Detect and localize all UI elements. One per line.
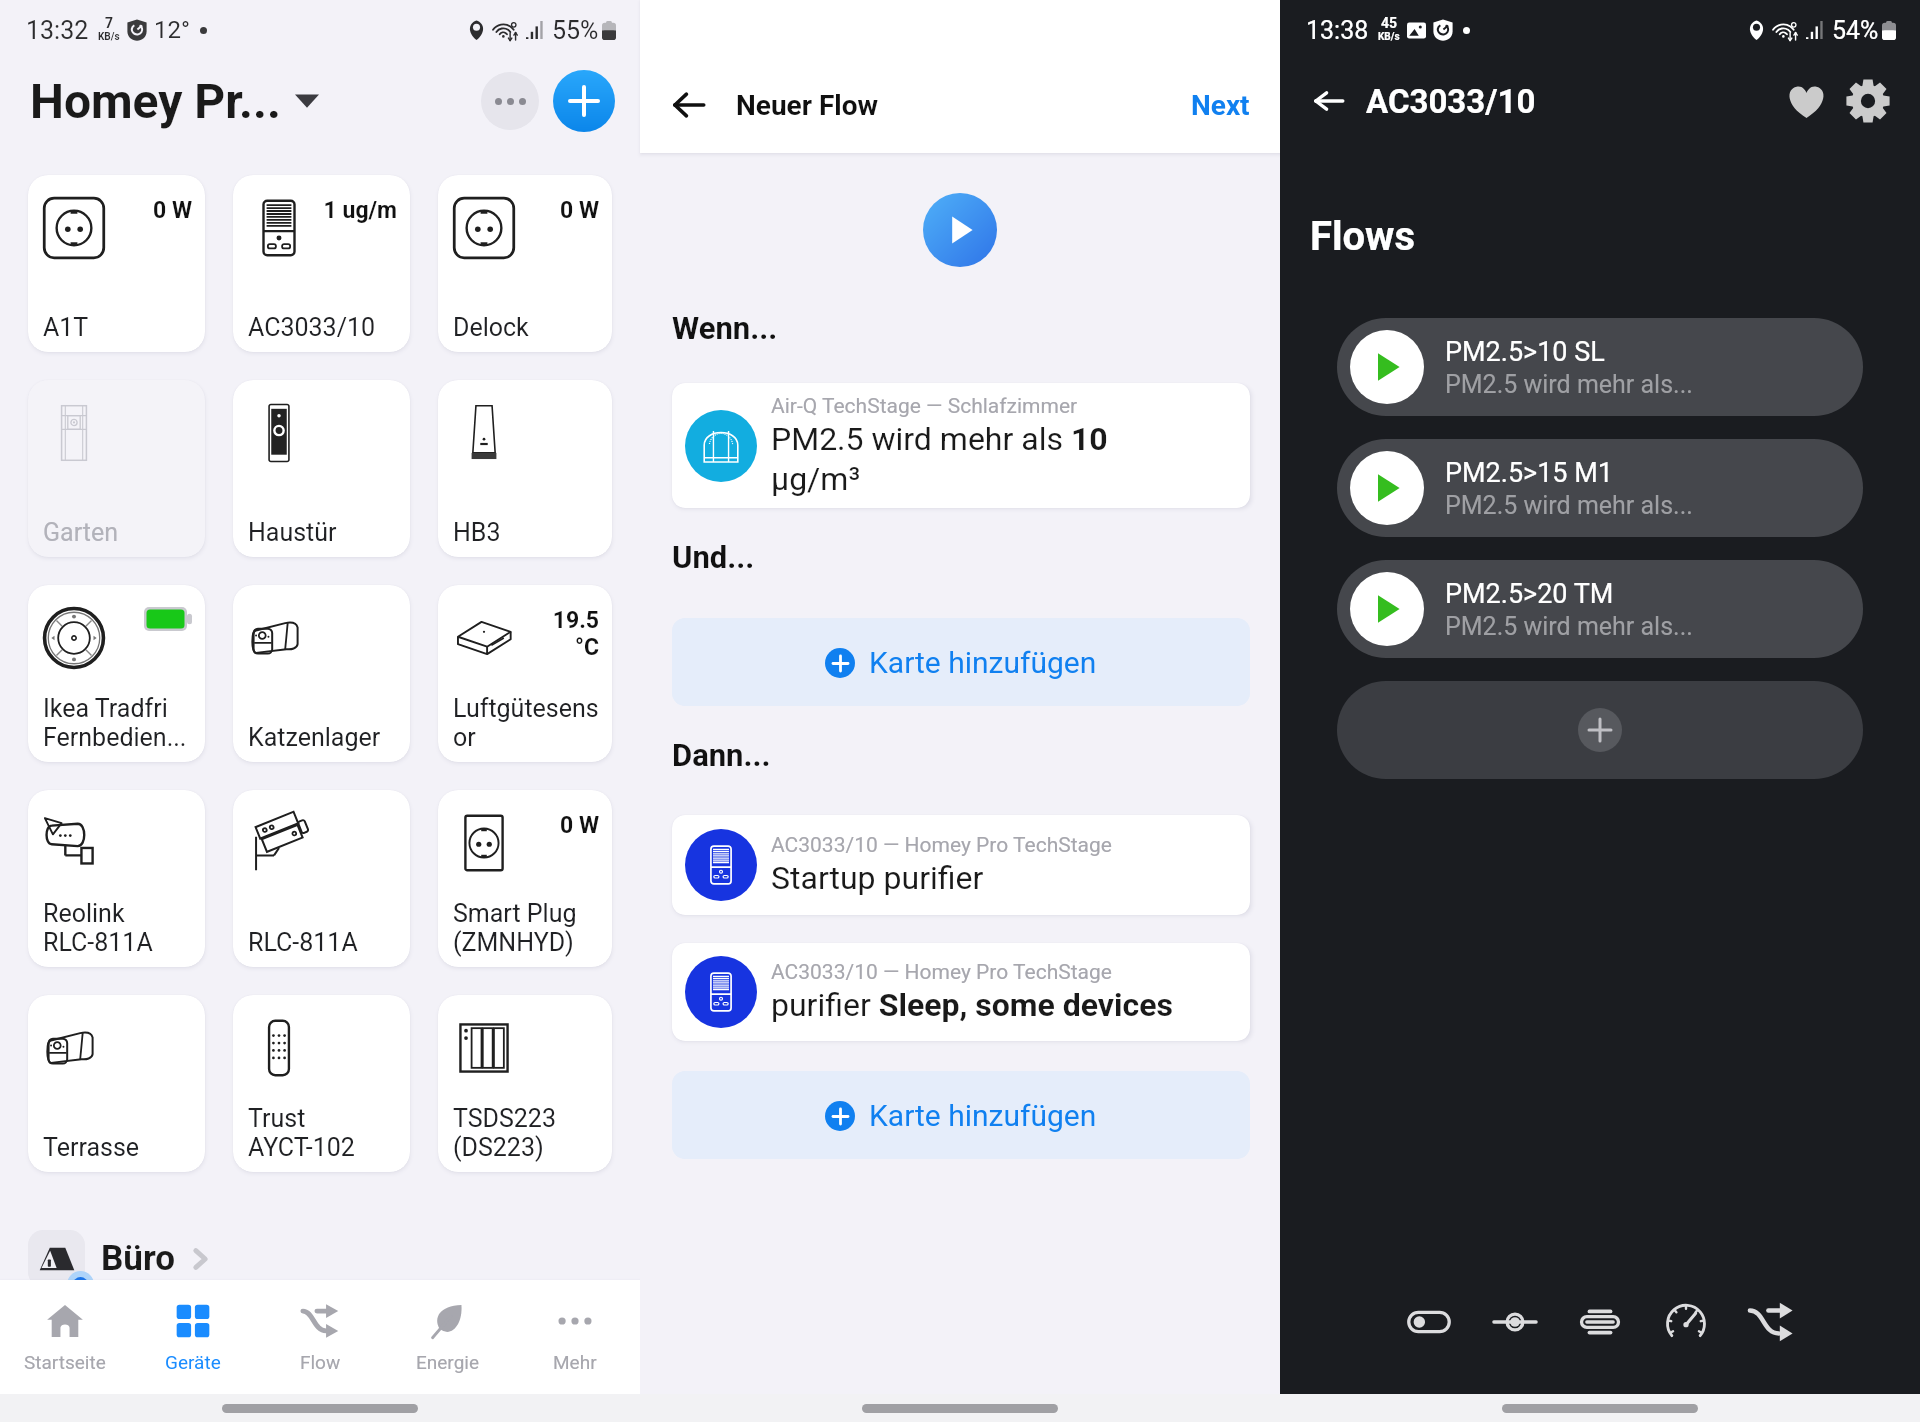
staticText: Haustür xyxy=(248,518,337,547)
staticText: 0 W xyxy=(559,197,599,224)
button[interactable]: Favorite xyxy=(1781,76,1831,126)
staticText: Flow xyxy=(300,1351,341,1373)
button[interactable]: Geräte xyxy=(131,1280,255,1394)
staticText: 0 W xyxy=(559,812,599,839)
staticText: PM2.5>15 M1 xyxy=(1445,457,1613,489)
button[interactable]: Mehr xyxy=(513,1280,637,1394)
button[interactable]: Ikea Tradfri xyxy=(28,585,205,762)
staticText: Karte hinzufügen xyxy=(869,1098,1097,1133)
staticText: (ZMNHYD) xyxy=(453,928,574,957)
staticText: Neuer Flow xyxy=(736,89,879,122)
staticText: KB/s xyxy=(98,31,120,43)
button[interactable]: Air-Q TechStage — Schlafzimmer xyxy=(672,383,1250,508)
button[interactable]: 0 W xyxy=(28,175,205,352)
staticText: 0 W xyxy=(152,197,192,224)
staticText: Startseite xyxy=(24,1351,106,1373)
staticText: PM2.5>10 SL xyxy=(1445,336,1605,368)
button[interactable]: RLC-811A xyxy=(233,790,410,967)
button[interactable]: Settings list xyxy=(1570,1292,1630,1352)
button[interactable]: 19.5 °C xyxy=(438,585,612,762)
staticText: Luftgütesens xyxy=(453,694,599,723)
staticText: RLC-811A xyxy=(248,928,358,957)
staticText: AC3033/10 xyxy=(1366,82,1536,121)
staticText: Wenn... xyxy=(672,310,778,346)
button[interactable]: PM2.5>10 SL xyxy=(1337,318,1863,416)
button[interactable]: 0 W xyxy=(438,175,612,352)
staticText: Flows xyxy=(1310,213,1416,260)
button[interactable]: Haustür xyxy=(233,380,410,557)
staticText: Büro xyxy=(101,1238,175,1279)
staticText: Trust xyxy=(248,1104,306,1133)
button[interactable]: Settings xyxy=(1843,76,1893,126)
staticText: Mehr xyxy=(553,1351,597,1373)
staticText: Geräte xyxy=(165,1351,221,1373)
staticText: Garten xyxy=(43,518,118,547)
staticText: KB/s xyxy=(1378,31,1400,43)
button[interactable]: Terrasse xyxy=(28,995,205,1172)
staticText: HB3 xyxy=(453,518,501,547)
button[interactable]: Flows xyxy=(1741,1292,1801,1352)
button[interactable]: HB3 xyxy=(438,380,612,557)
button[interactable]: PM2.5>15 M1 xyxy=(1337,439,1863,537)
staticText: PM2.5 wird mehr als... xyxy=(1445,370,1693,399)
staticText: AC3033/10 xyxy=(248,313,376,342)
staticText: Und... xyxy=(672,539,755,575)
button[interactable]: AC3033/10 — Homey Pro TechStage xyxy=(672,943,1250,1041)
button[interactable]: Karte hinzufügen xyxy=(672,1071,1250,1159)
staticText: AC3033/10 — Homey Pro TechStage xyxy=(771,960,1112,985)
button[interactable]: Trust xyxy=(233,995,410,1172)
button[interactable]: Startseite xyxy=(3,1280,127,1394)
staticText: PM2.5 wird mehr als 10 µg/m³ xyxy=(771,420,1143,498)
staticText: or xyxy=(453,723,476,752)
staticText: Fernbedien... xyxy=(43,723,187,752)
staticText: Terrasse xyxy=(43,1133,140,1162)
staticText: Karte hinzufügen xyxy=(869,645,1097,680)
button[interactable]: Flow xyxy=(258,1280,382,1394)
button[interactable]: Dimmer xyxy=(1485,1292,1545,1352)
button[interactable]: 0 W xyxy=(438,790,612,967)
staticText: 12° xyxy=(154,16,190,44)
staticText: PM2.5>20 TM xyxy=(1445,578,1614,610)
button[interactable]: Energie xyxy=(385,1280,509,1394)
button[interactable]: Back xyxy=(1308,80,1350,122)
staticText: Smart Plug xyxy=(453,899,577,928)
staticText: RLC-811A xyxy=(43,928,153,957)
button[interactable]: Garten xyxy=(28,380,205,557)
staticText: Air-Q TechStage — Schlafzimmer xyxy=(771,394,1078,419)
button[interactable]: Add flow xyxy=(1337,681,1863,779)
button[interactable]: Back xyxy=(666,82,712,128)
staticText: 19.5 °C xyxy=(552,607,599,660)
staticText: Ikea Tradfri xyxy=(43,694,168,723)
button[interactable]: Reolink xyxy=(28,790,205,967)
staticText: 13:38 xyxy=(1306,16,1369,45)
staticText: Next xyxy=(1191,89,1250,122)
button[interactable]: Test flow xyxy=(923,193,997,267)
staticText: 13:32 xyxy=(26,16,89,45)
button[interactable]: Karte hinzufügen xyxy=(672,618,1250,706)
button[interactable]: Homey Pr... xyxy=(30,73,481,129)
button[interactable]: More options xyxy=(481,72,539,130)
button[interactable]: PM2.5>20 TM xyxy=(1337,560,1863,658)
button[interactable]: TSDS223 xyxy=(438,995,612,1172)
staticText: 45 xyxy=(1381,15,1398,31)
staticText: PM2.5 wird mehr als... xyxy=(1445,491,1693,520)
staticText: purifier Sleep, some devices xyxy=(771,986,1173,1024)
staticText: Katzenlager xyxy=(248,723,381,752)
button[interactable]: Toggle xyxy=(1399,1292,1459,1352)
button[interactable]: Katzenlager xyxy=(233,585,410,762)
button[interactable]: Büro xyxy=(28,1230,213,1287)
staticText: Startup purifier xyxy=(771,859,984,897)
staticText: Homey Pr... xyxy=(30,73,281,129)
staticText: 54% xyxy=(1832,16,1879,45)
button[interactable]: Meter xyxy=(1656,1292,1716,1352)
staticText: TSDS223 xyxy=(453,1104,556,1133)
button[interactable]: Next xyxy=(1191,89,1250,122)
button[interactable]: Add device xyxy=(553,70,615,132)
staticText: (DS223) xyxy=(453,1133,544,1162)
staticText: PM2.5 wird mehr als... xyxy=(1445,612,1693,641)
button[interactable]: 1 ug/m xyxy=(233,175,410,352)
button[interactable]: AC3033/10 — Homey Pro TechStage xyxy=(672,815,1250,915)
staticText: A1T xyxy=(43,313,89,342)
staticText: 7 xyxy=(105,15,114,31)
staticText: Reolink xyxy=(43,899,125,928)
